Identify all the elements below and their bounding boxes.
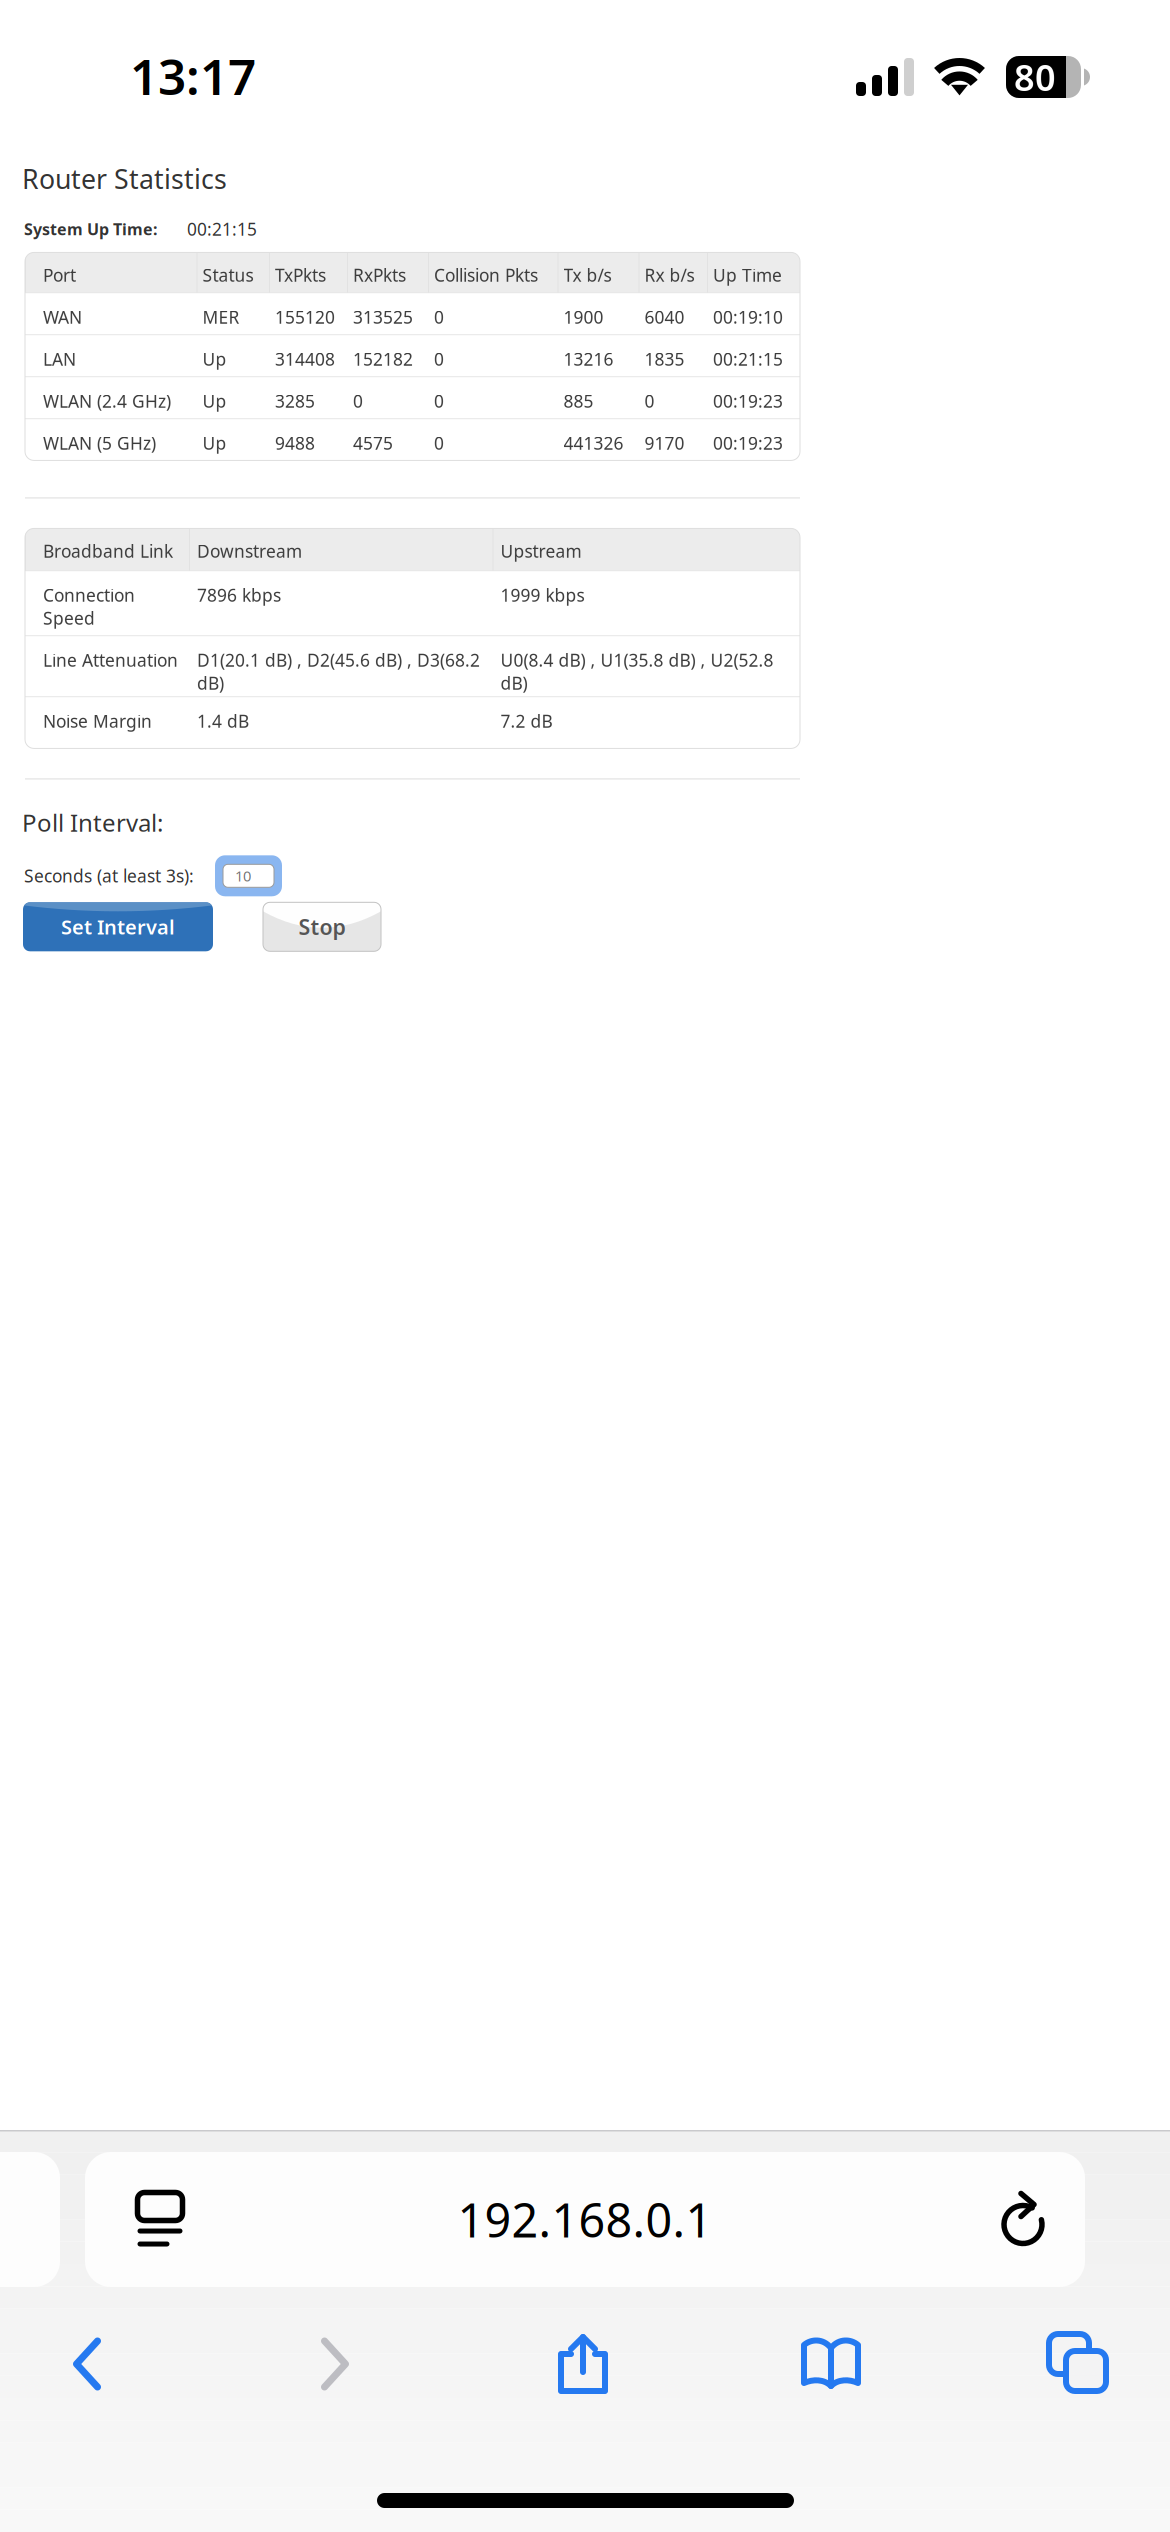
staticText: Upstream: [500, 539, 581, 562]
staticText: 00:21:15: [713, 347, 783, 370]
staticText: 192.168.0.1: [457, 2188, 712, 2250]
staticText: 885: [563, 389, 593, 412]
staticText: Router Statistics: [22, 161, 227, 196]
staticText: Port: [43, 263, 76, 286]
button[interactable]: Reload: [963, 2152, 1083, 2287]
staticText: 0: [644, 389, 654, 412]
staticText: Stop: [298, 913, 345, 941]
staticText: Up: [202, 389, 226, 412]
button[interactable]: Set Interval: [23, 902, 213, 951]
staticText: Poll Interval:: [22, 806, 163, 838]
staticText: 6040: [644, 305, 684, 328]
staticText: Noise Margin: [43, 709, 152, 732]
staticText: 0: [353, 389, 363, 412]
staticText: 441326: [563, 431, 623, 454]
staticText: Downstream: [197, 539, 302, 562]
staticText: 1835: [644, 347, 684, 370]
staticText: 13:17: [130, 43, 256, 108]
staticText: Broadband Link: [43, 539, 173, 562]
staticText: 1999 kbps: [500, 583, 584, 606]
staticText: 00:21:15: [187, 217, 257, 240]
staticText: 1900: [563, 305, 603, 328]
staticText: WLAN (5 GHz): [43, 431, 156, 454]
staticText: 7896 kbps: [197, 583, 281, 606]
staticText: 313525: [353, 305, 413, 328]
staticText: Rx b/s: [644, 263, 694, 286]
staticText: Line Attenuation: [43, 648, 178, 671]
staticText: Tx b/s: [563, 263, 611, 286]
staticText: 155120: [275, 305, 335, 328]
staticText: 0: [434, 305, 444, 328]
staticText: 13216: [563, 347, 613, 370]
staticText: 80: [1014, 53, 1056, 101]
staticText: 3285: [275, 389, 315, 412]
staticText: WLAN (2.4 GHz): [43, 389, 171, 412]
staticText: RxPkts: [353, 263, 406, 286]
button[interactable]: Forward: [248, 2309, 422, 2419]
staticText: Seconds (at least 3s):: [24, 864, 194, 887]
staticText: 1.4 dB: [197, 709, 249, 732]
staticText: 0: [434, 347, 444, 370]
button[interactable]: Stop: [263, 902, 381, 951]
staticText: 0: [434, 431, 444, 454]
button[interactable]: Page settings: [85, 2152, 235, 2287]
staticText: Up Time: [713, 263, 782, 286]
button[interactable]: Bookmarks: [744, 2309, 918, 2419]
staticText: TxPkts: [275, 263, 326, 286]
staticText: System Up Time:: [24, 218, 157, 239]
staticText: 00:19:10: [713, 305, 783, 328]
staticText: MER: [202, 305, 239, 328]
staticText: D1(20.1 dB) , D2(45.6 dB) , D3(68.2 dB): [197, 648, 480, 694]
button[interactable]: Tabs: [992, 2309, 1166, 2419]
staticText: WAN: [43, 305, 82, 328]
staticText: 314408: [275, 347, 335, 370]
staticText: 0: [434, 389, 444, 412]
staticText: Up: [202, 431, 226, 454]
staticText: 00:19:23: [713, 431, 783, 454]
staticText: 9488: [275, 431, 315, 454]
button[interactable]: Back: [0, 2309, 174, 2419]
staticText: 152182: [353, 347, 413, 370]
staticText: 00:19:23: [713, 389, 783, 412]
staticText: U0(8.4 dB) , U1(35.8 dB) , U2(52.8 dB): [500, 648, 773, 694]
staticText: Status: [202, 263, 253, 286]
staticText: 9170: [644, 431, 684, 454]
staticText: 4575: [353, 431, 393, 454]
staticText: 10: [235, 866, 251, 886]
staticText: Set Interval: [61, 913, 175, 940]
staticText: 7.2 dB: [500, 709, 552, 732]
button[interactable]: Share: [496, 2309, 670, 2419]
staticText: LAN: [43, 347, 76, 370]
staticText: Up: [202, 347, 226, 370]
staticText: Connection Speed: [43, 583, 135, 629]
staticText: Collision Pkts: [434, 263, 538, 286]
